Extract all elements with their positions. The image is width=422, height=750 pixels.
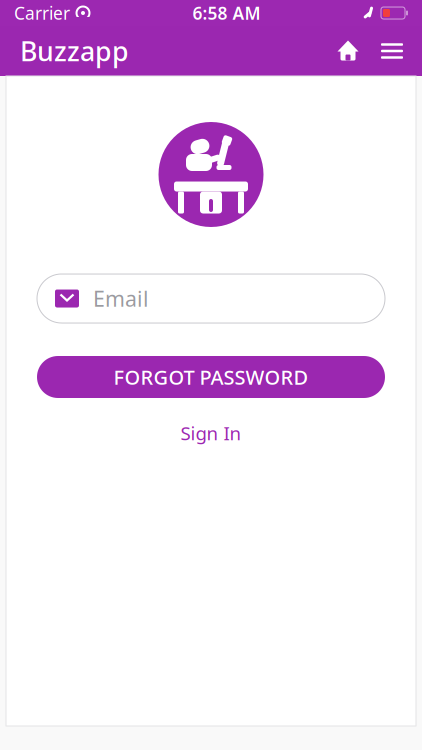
staticText: Carrier	[14, 1, 70, 24]
staticText: 6:58 AM	[192, 1, 260, 24]
button[interactable]: FORGOT PASSWORD	[37, 356, 385, 398]
button[interactable]: Email	[37, 274, 385, 323]
staticText: Email	[93, 284, 149, 313]
button[interactable]: Home	[326, 26, 370, 76]
staticText: Sign In	[180, 421, 241, 445]
button[interactable]: Menu	[370, 26, 414, 76]
button[interactable]: Sign In	[37, 420, 385, 446]
staticText: Buzzapp	[20, 33, 129, 69]
staticText: FORGOT PASSWORD	[113, 364, 308, 390]
